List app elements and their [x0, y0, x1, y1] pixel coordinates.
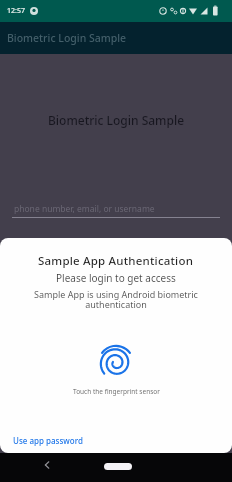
staticText: Sample App is using Android biometric au…: [34, 288, 198, 310]
staticText: Touch the fingerprint sensor: [73, 387, 160, 396]
button[interactable]: [39, 457, 55, 473]
staticText: phone number, email, or username: [14, 203, 155, 215]
staticText: Please login to get access: [56, 271, 176, 285]
staticText: Biometric Login Sample: [48, 112, 185, 128]
staticText: 12:57: [7, 6, 25, 16]
staticText: Use app password: [13, 435, 83, 446]
staticText: Biometric Login Sample: [7, 31, 127, 45]
button[interactable]: Use app password: [4, 428, 92, 452]
staticText: Sample App Authentication: [38, 253, 194, 269]
button[interactable]: [96, 342, 136, 382]
button[interactable]: [104, 463, 132, 470]
